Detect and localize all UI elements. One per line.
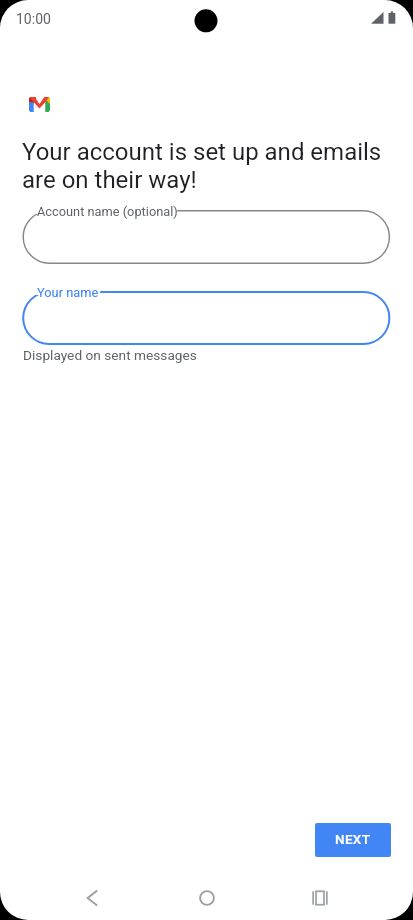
button[interactable]: Account name (optional) [0, 210, 413, 264]
staticText: Account name (optional) [37, 204, 178, 219]
staticText: 10:00 [16, 11, 51, 27]
button[interactable]: NEXT [315, 823, 391, 857]
staticText: NEXT [335, 832, 371, 848]
staticText: Displayed on sent messages [23, 347, 197, 363]
button[interactable]: Back [72, 878, 112, 918]
staticText: Your name [37, 285, 99, 300]
button[interactable]: Home [187, 878, 227, 918]
button[interactable]: Your name [0, 291, 413, 345]
button[interactable]: Recents [300, 878, 340, 918]
staticText: Your account is set up and emails are on… [22, 138, 396, 194]
